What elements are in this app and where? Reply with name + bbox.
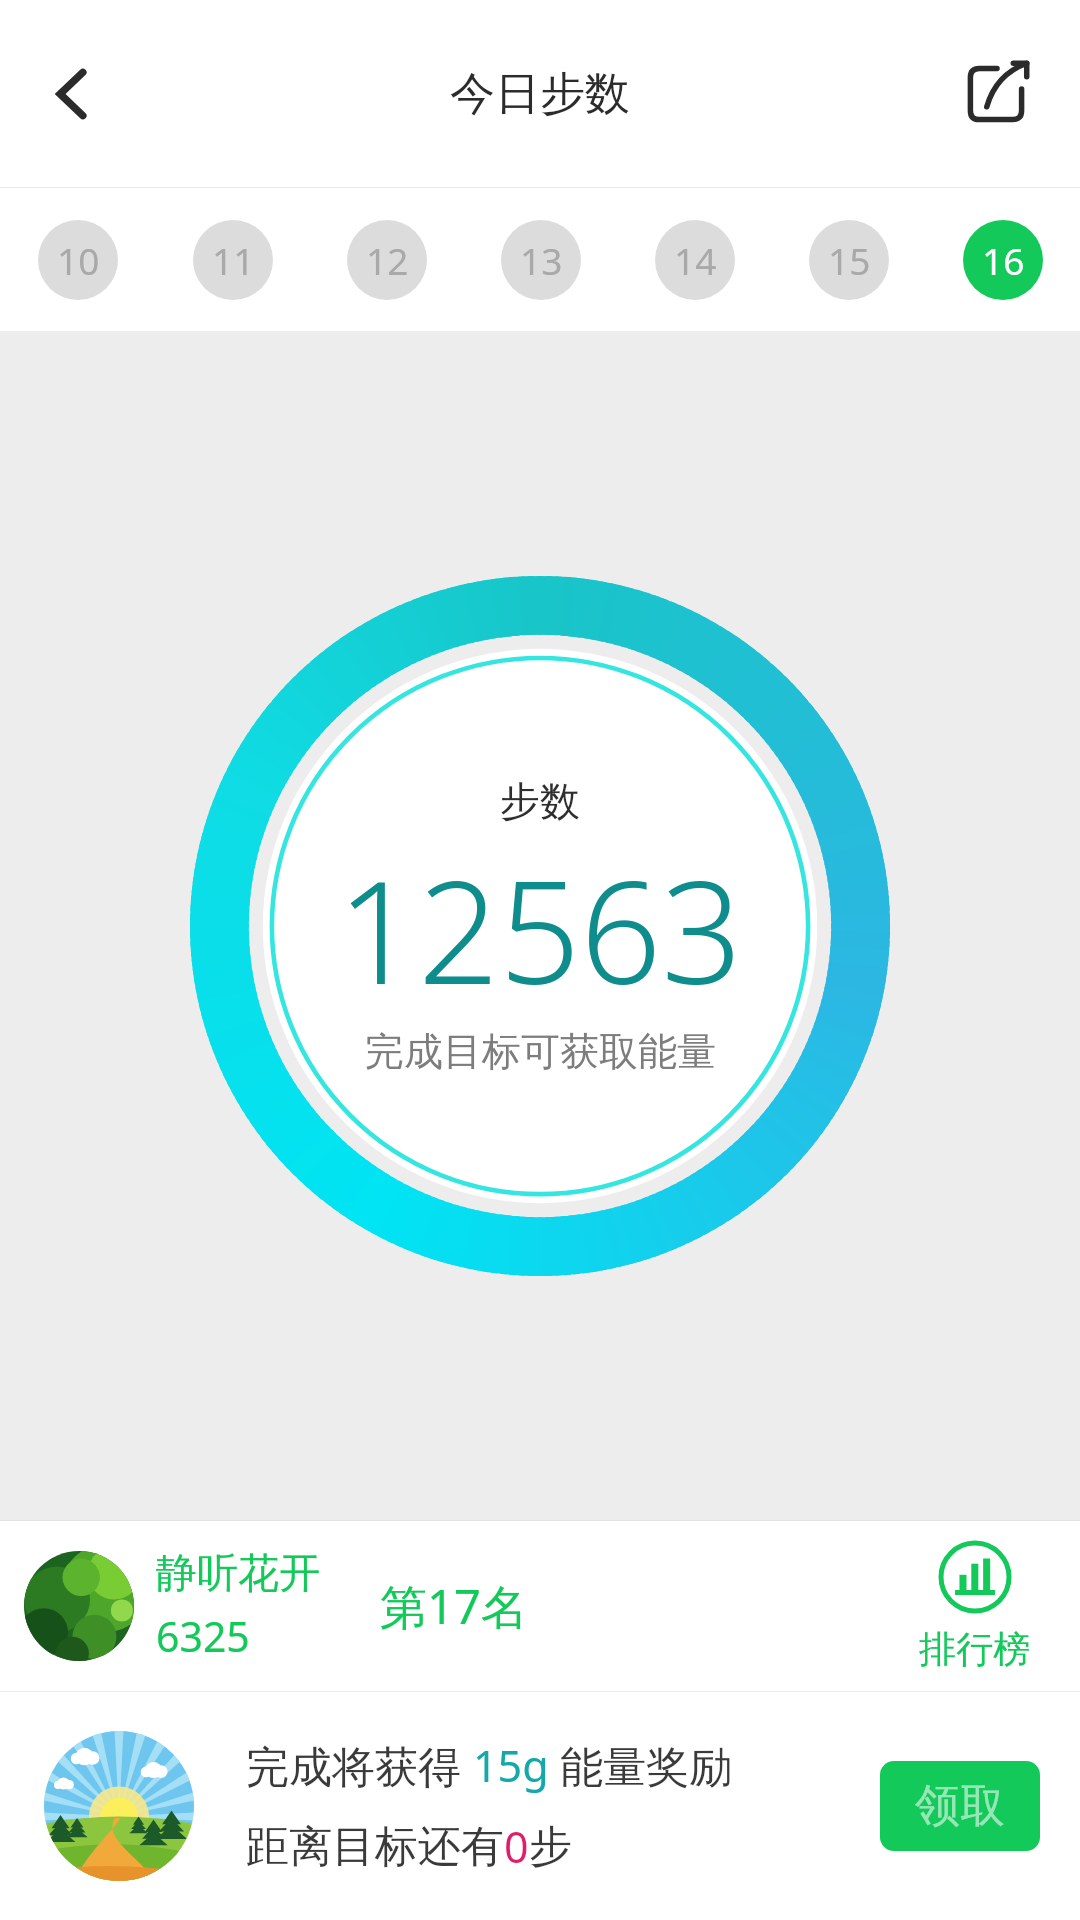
button[interactable]: 15 xyxy=(809,220,889,300)
staticText: 步 xyxy=(529,1820,572,1874)
button[interactable]: 10 xyxy=(38,220,118,300)
button[interactable]: 排行榜 xyxy=(919,1540,1030,1673)
button[interactable]: Back xyxy=(22,44,122,144)
button[interactable]: Share xyxy=(946,44,1046,144)
staticText: 步数 xyxy=(500,776,580,826)
staticText: 能量奖励 xyxy=(549,1736,733,1795)
button[interactable]: 11 xyxy=(193,220,273,300)
staticText: 15g xyxy=(473,1736,549,1795)
staticText: 14 xyxy=(674,235,717,285)
staticText: 距离目标还有 xyxy=(246,1820,504,1874)
button[interactable]: 14 xyxy=(655,220,735,300)
staticText: 16 xyxy=(982,235,1025,285)
staticText: 10 xyxy=(57,235,100,285)
staticText: 12 xyxy=(366,235,409,285)
staticText: 0 xyxy=(504,1817,529,1876)
staticText: 15 xyxy=(828,235,871,285)
staticText: 领取 xyxy=(915,1778,1005,1835)
staticText: 排行榜 xyxy=(919,1626,1030,1673)
staticText: 13 xyxy=(520,235,563,285)
button[interactable]: 13 xyxy=(501,220,581,300)
button[interactable]: 领取 xyxy=(880,1761,1040,1851)
staticText: 今日步数 xyxy=(450,66,630,123)
staticText: 12563 xyxy=(337,832,743,1025)
staticText: 11 xyxy=(212,235,255,285)
staticText: 完成将获得 xyxy=(246,1736,473,1795)
button[interactable]: 静听花开 xyxy=(0,1521,1080,1691)
staticText: 完成目标可获取能量 xyxy=(365,1027,716,1076)
staticText: 6325 xyxy=(156,1608,250,1664)
staticText: 第17名 xyxy=(380,1574,528,1638)
button[interactable]: 12 xyxy=(347,220,427,300)
button[interactable]: 16 xyxy=(963,220,1043,300)
staticText: 静听花开 xyxy=(156,1548,320,1600)
